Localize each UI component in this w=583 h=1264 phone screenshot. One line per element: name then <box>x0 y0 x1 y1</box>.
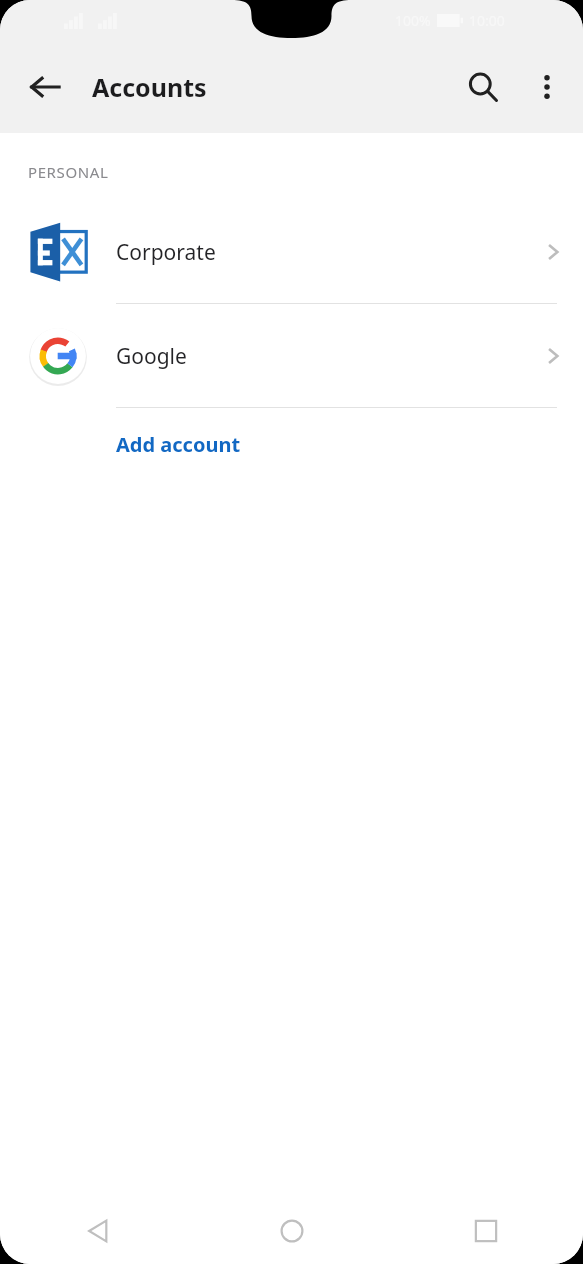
button[interactable]: Home <box>195 1198 389 1264</box>
button[interactable]: Add account <box>0 408 583 480</box>
button[interactable]: Search <box>453 57 513 117</box>
button[interactable]: Recent apps <box>389 1198 583 1264</box>
button[interactable]: Google <box>0 304 583 408</box>
staticText: Google <box>116 342 523 371</box>
button[interactable]: Back <box>12 54 78 120</box>
staticText: Corporate <box>116 238 523 267</box>
button[interactable]: Corporate <box>0 200 583 304</box>
staticText: Add account <box>116 431 241 458</box>
staticText: Accounts <box>92 70 207 104</box>
staticText: PERSONAL <box>28 162 109 182</box>
button[interactable]: More options <box>519 59 575 115</box>
button[interactable]: Back <box>0 1198 195 1264</box>
